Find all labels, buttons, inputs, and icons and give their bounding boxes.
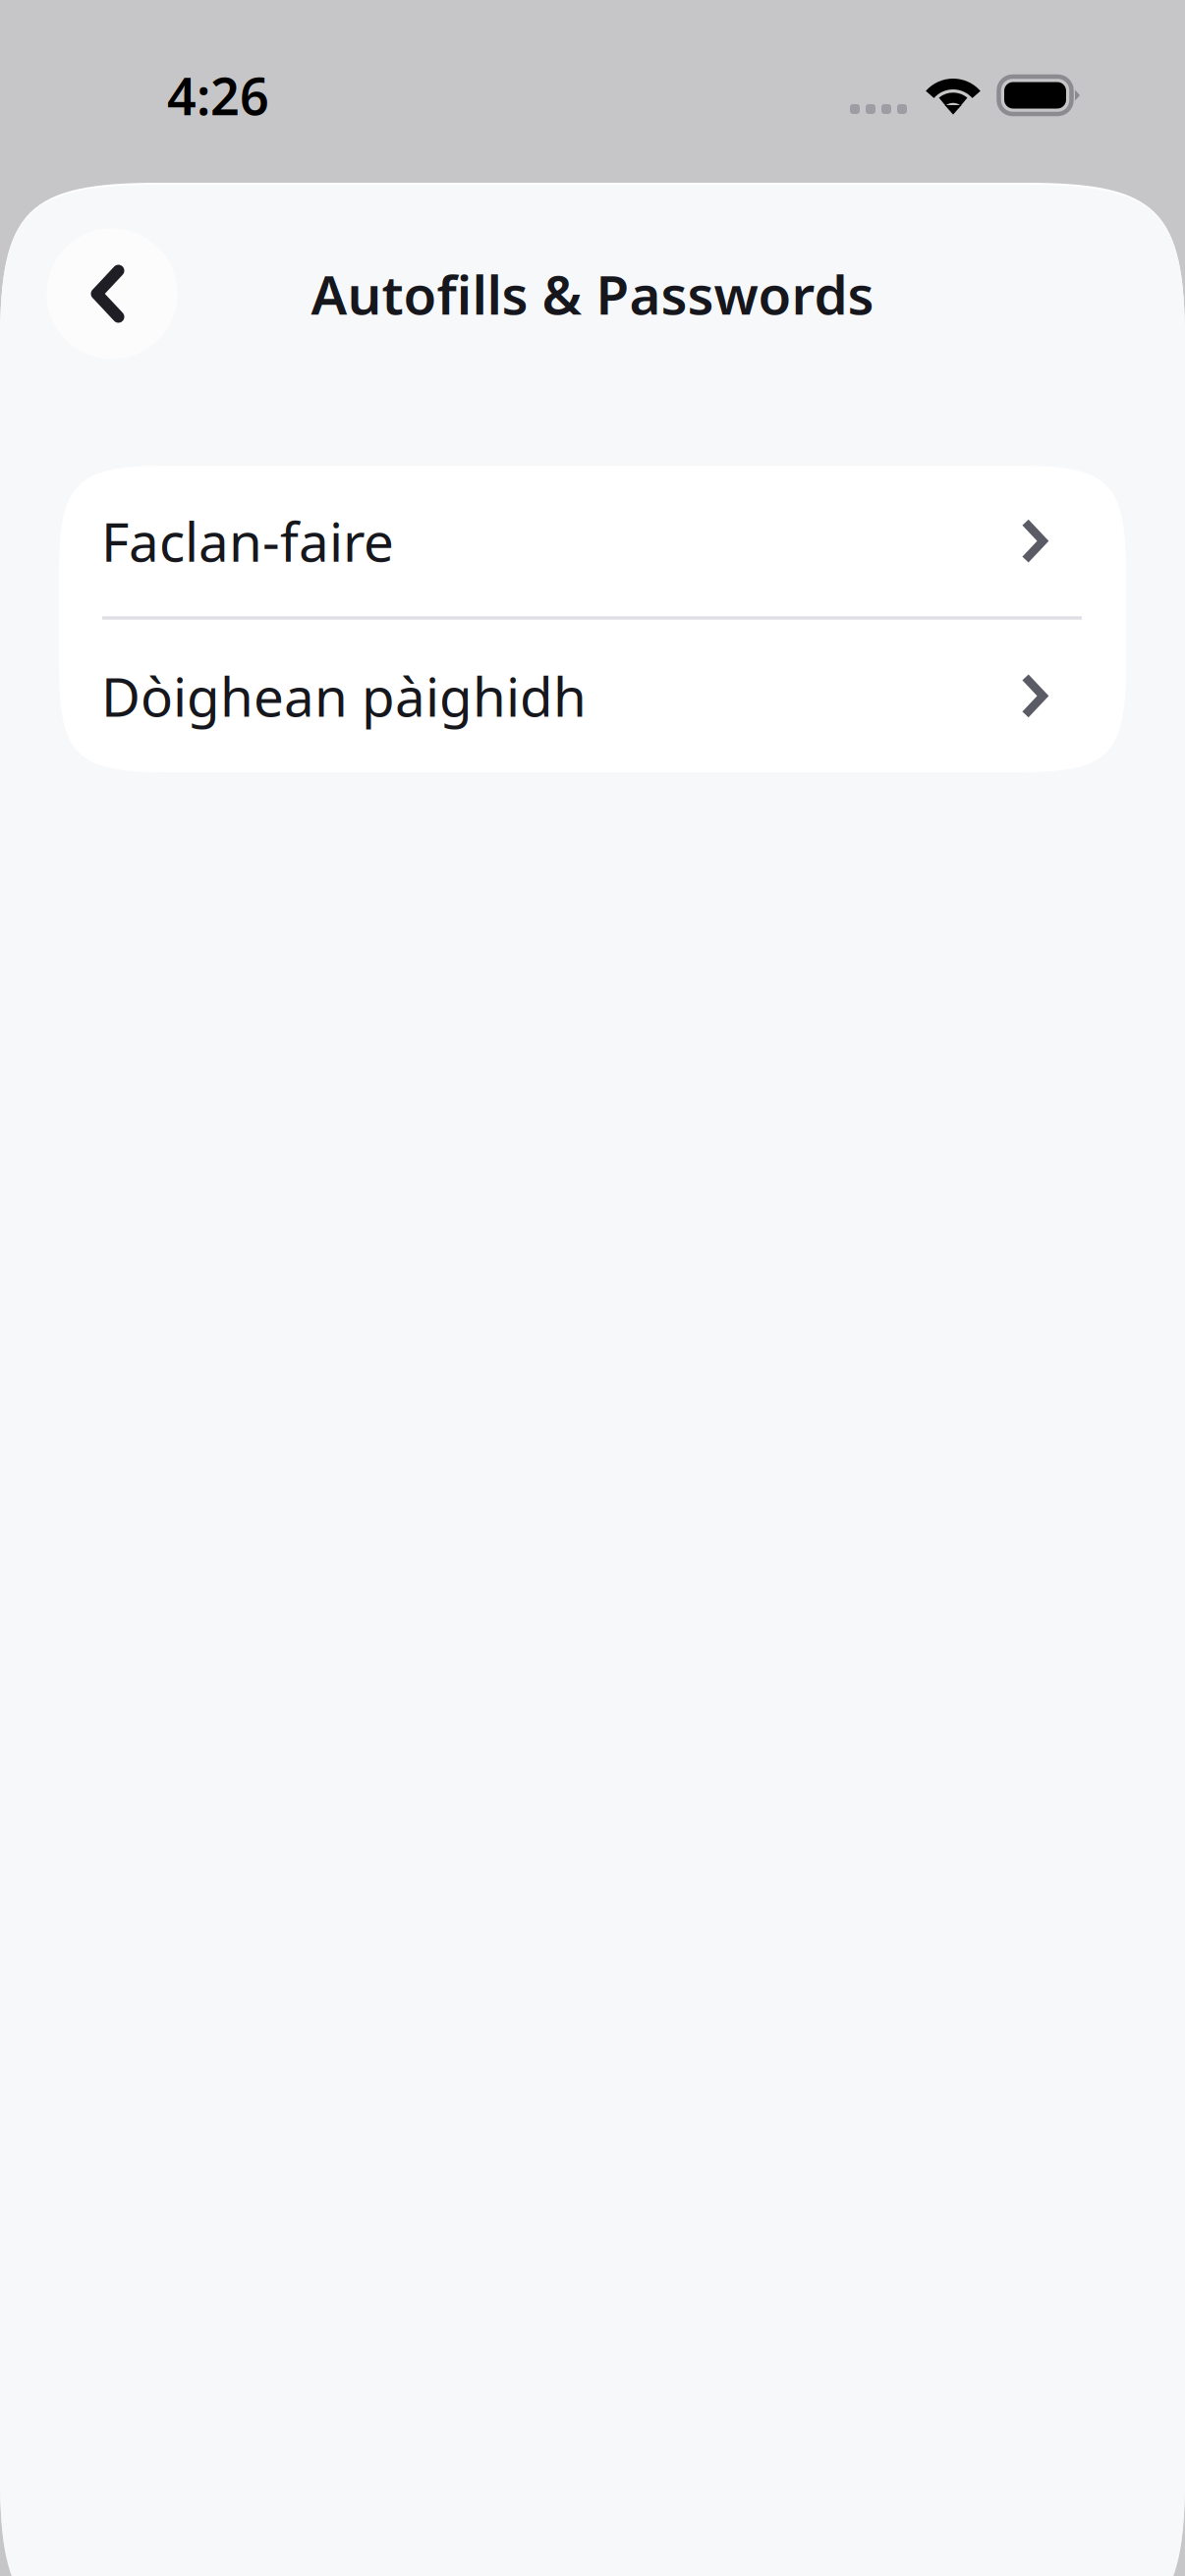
button[interactable]: Dòighean pàighidh: [59, 620, 1126, 772]
staticText: Autofills & Passwords: [311, 258, 874, 329]
staticText: Dòighean pàighidh: [101, 660, 587, 732]
staticText: 4:26: [167, 61, 269, 129]
button[interactable]: Back: [47, 228, 177, 359]
button[interactable]: Faclan-faire: [59, 466, 1126, 616]
staticText: Faclan-faire: [101, 505, 394, 577]
